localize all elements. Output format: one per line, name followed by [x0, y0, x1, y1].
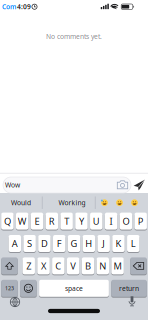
button[interactable]: M [111, 257, 124, 274]
button[interactable]: K [112, 235, 125, 252]
staticText: E [34, 215, 39, 227]
button[interactable]: C [52, 257, 64, 274]
button[interactable]: Shift [1, 257, 18, 274]
staticText: return [119, 284, 139, 293]
button[interactable]: Working [47, 194, 97, 212]
staticText: T [64, 215, 69, 227]
staticText: Y [79, 215, 84, 227]
staticText: S [27, 237, 32, 250]
button[interactable]: Emoji suggestions [94, 194, 144, 212]
staticText: P [138, 215, 144, 227]
button[interactable]: O [120, 213, 132, 230]
staticText: Z [26, 260, 31, 272]
staticText: I [110, 215, 113, 227]
staticText: D [41, 237, 48, 250]
button[interactable]: G [68, 235, 80, 252]
button[interactable]: F [53, 235, 65, 252]
staticText: J [102, 237, 105, 250]
staticText: space [65, 284, 83, 293]
staticText: Com [2, 2, 16, 11]
button[interactable]: V [67, 257, 79, 274]
button[interactable]: Emoji [20, 280, 37, 297]
staticText: N [99, 260, 106, 272]
staticText: K [115, 237, 121, 250]
button[interactable]: Camera [117, 179, 128, 190]
button[interactable]: Comment field [3, 177, 131, 193]
button[interactable]: Delete [130, 257, 147, 274]
staticText: Working [58, 198, 85, 207]
button[interactable]: 123 [1, 280, 18, 297]
button[interactable]: A [9, 235, 21, 252]
button[interactable]: J [97, 235, 110, 252]
button[interactable]: X [37, 257, 50, 274]
button[interactable]: N [96, 257, 109, 274]
button[interactable]: L [127, 235, 139, 252]
button[interactable]: return [111, 280, 147, 297]
button[interactable]: Send [133, 179, 145, 191]
button[interactable]: B [82, 257, 94, 274]
staticText: 4:09 [17, 2, 31, 11]
button[interactable]: I [105, 213, 117, 230]
button[interactable]: space [39, 280, 109, 297]
button[interactable]: S [23, 235, 36, 252]
staticText: Q [4, 215, 11, 227]
staticText: No comments yet. [46, 32, 102, 41]
staticText: O [122, 215, 129, 227]
button[interactable]: Q [1, 213, 14, 230]
staticText: M [114, 260, 122, 272]
staticText: U [93, 215, 100, 227]
button[interactable]: Next keyboard [9, 296, 21, 308]
staticText: B [85, 260, 91, 272]
button[interactable]: H [83, 235, 95, 252]
button[interactable]: R [46, 213, 58, 230]
staticText: G [70, 237, 77, 250]
staticText: F [57, 237, 62, 250]
staticText: X [41, 260, 46, 272]
staticText: Would [11, 198, 31, 207]
button[interactable]: Return to app [2, 2, 31, 11]
button[interactable]: T [60, 213, 73, 230]
button[interactable]: W [16, 213, 28, 230]
button[interactable]: Y [75, 213, 88, 230]
staticText: 123 [5, 285, 14, 292]
button[interactable]: Z [22, 257, 35, 274]
button[interactable]: Dictation [126, 295, 138, 307]
staticText: Wow [5, 180, 20, 189]
staticText: L [131, 237, 136, 250]
staticText: H [85, 237, 92, 250]
staticText: A [12, 237, 18, 250]
staticText: C [55, 260, 61, 272]
staticText: V [70, 260, 76, 272]
button[interactable]: P [134, 213, 147, 230]
staticText: W [18, 215, 27, 227]
button[interactable]: Would [1, 194, 41, 212]
button[interactable]: E [31, 213, 43, 230]
button[interactable]: D [38, 235, 51, 252]
button[interactable]: U [90, 213, 102, 230]
staticText: R [49, 215, 55, 227]
